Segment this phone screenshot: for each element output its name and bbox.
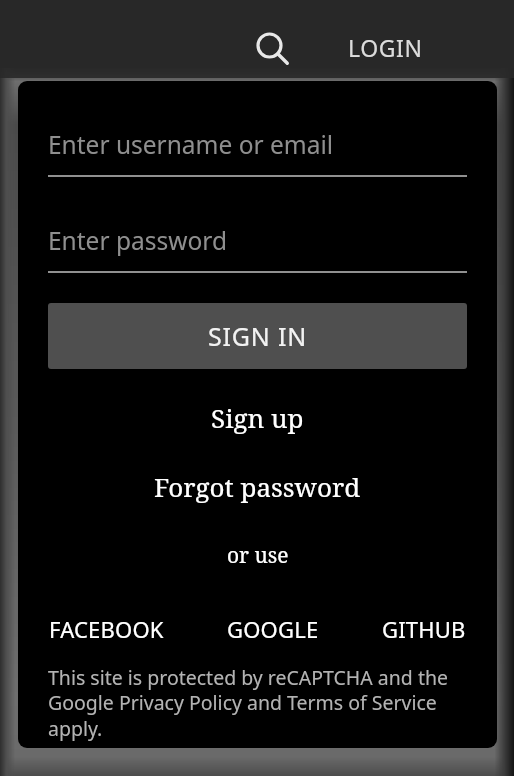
staticText: or use xyxy=(227,541,289,570)
button[interactable]: Search xyxy=(246,23,294,71)
button[interactable]: FACEBOOK xyxy=(46,610,167,648)
staticText: Sign up xyxy=(211,400,304,435)
button[interactable]: Forgot password xyxy=(148,467,367,506)
button[interactable]: or use xyxy=(221,539,295,572)
button[interactable]: SIGN IN xyxy=(48,303,467,369)
button[interactable]: Enter username or email xyxy=(48,128,467,177)
button[interactable]: Sign up xyxy=(205,398,310,437)
staticText: Enter username or email xyxy=(48,128,334,161)
staticText: FACEBOOK xyxy=(49,614,164,644)
staticText: LOGIN xyxy=(348,32,423,63)
button[interactable]: LOGIN xyxy=(336,20,435,74)
button[interactable]: GOOGLE xyxy=(224,610,322,648)
staticText: GOOGLE xyxy=(227,614,319,644)
staticText: Forgot password xyxy=(154,469,361,504)
staticText: This site is protected by reCAPTCHA and … xyxy=(48,664,471,742)
staticText: SIGN IN xyxy=(208,319,307,353)
staticText: Enter password xyxy=(48,224,227,257)
button[interactable]: Enter password xyxy=(48,224,467,273)
staticText: GITHUB xyxy=(382,614,466,644)
button[interactable]: GITHUB xyxy=(379,610,469,648)
